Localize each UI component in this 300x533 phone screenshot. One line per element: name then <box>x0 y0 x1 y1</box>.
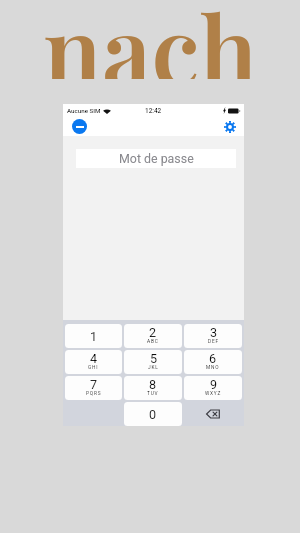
button[interactable]: 9 <box>184 376 242 400</box>
staticText: 8 <box>149 377 157 392</box>
staticText: JKL <box>148 365 159 371</box>
button[interactable]: 8 <box>124 376 182 400</box>
staticText: PQRS <box>86 391 102 397</box>
button[interactable]: Mot de passe <box>76 149 236 168</box>
staticText: Mot de passe <box>119 151 194 166</box>
button[interactable]: 7 <box>65 376 122 400</box>
staticText: 7 <box>90 377 98 392</box>
staticText: GHI <box>88 365 99 371</box>
staticText: ABC <box>147 339 159 345</box>
staticText: WXYZ <box>205 391 222 397</box>
staticText: nach <box>43 0 258 79</box>
button[interactable]: 4 <box>65 350 122 374</box>
button[interactable]: 6 <box>184 350 242 374</box>
staticText: MNO <box>206 365 220 371</box>
button[interactable]: 5 <box>124 350 182 374</box>
staticText: 12:42 <box>145 107 162 115</box>
button[interactable]: 0 <box>124 402 182 426</box>
staticText: 6 <box>209 351 217 366</box>
staticText: DEF <box>208 339 219 345</box>
staticText: 0 <box>149 407 157 422</box>
staticText: 5 <box>150 351 158 366</box>
staticText: 9 <box>210 377 218 392</box>
button[interactable]: Settings <box>222 119 238 135</box>
staticText: 4 <box>90 351 98 366</box>
staticText: 2 <box>149 325 157 340</box>
staticText: 1 <box>90 329 98 344</box>
staticText: Aucune SIM <box>67 107 101 114</box>
staticText: 3 <box>210 325 218 340</box>
button[interactable]: 1 <box>65 324 122 348</box>
button[interactable]: 2 <box>124 324 182 348</box>
staticText: TUV <box>147 391 159 397</box>
button[interactable]: 3 <box>184 324 242 348</box>
button[interactable]: Backspace <box>184 402 242 426</box>
button[interactable]: Remove <box>72 119 87 134</box>
